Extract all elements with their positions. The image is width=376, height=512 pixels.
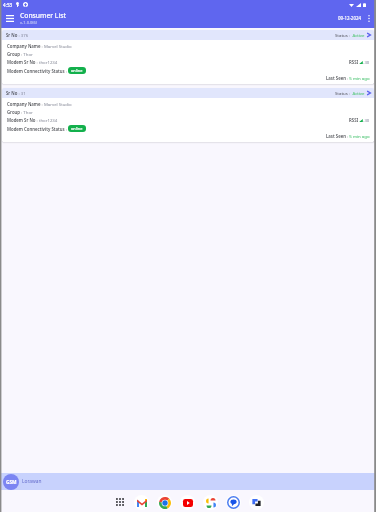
button[interactable]: Navigation menu (0, 9, 20, 28)
staticText: Last Seen : 5 min ago (326, 133, 370, 139)
button[interactable]: More options (362, 9, 376, 28)
staticText: Modem Connectivity Status : (7, 68, 67, 74)
button[interactable]: Gmail (134, 495, 149, 510)
staticText: Consumer List (20, 11, 66, 20)
staticText: 09-12-2024 (338, 15, 361, 21)
staticText: Modem Connectivity Status : (7, 126, 67, 132)
button[interactable]: Phone Link (249, 495, 264, 510)
staticText: v-1.0.0(6) (20, 20, 38, 25)
button[interactable]: GSM (0, 473, 376, 490)
staticText: Group : Thor (7, 109, 33, 115)
staticText: Lorawan (22, 478, 42, 485)
button[interactable]: Sr No : 376 (2, 30, 374, 84)
staticText: Sr No : 376 (6, 32, 29, 38)
staticText: Company Name : Marvel Studio (7, 101, 72, 107)
staticText: Status : Active (335, 90, 365, 96)
staticText: Last Seen : 5 min ago (326, 75, 370, 81)
staticText: -30 (363, 59, 370, 65)
button[interactable]: Chrome (157, 495, 172, 510)
button[interactable]: YouTube (180, 495, 195, 510)
staticText: GSM (6, 479, 17, 486)
staticText: Modem Sr No : thor1234 (7, 59, 58, 65)
button[interactable]: Photos (203, 495, 218, 510)
staticText: RSSI (349, 117, 359, 123)
staticText: online (71, 68, 83, 73)
button[interactable]: Messages (226, 495, 241, 510)
staticText: 4:53 (3, 2, 13, 8)
button[interactable]: All apps (113, 495, 127, 509)
staticText: Status : Active (335, 32, 365, 38)
staticText: RSSI (349, 59, 359, 65)
staticText: Sr No : 31 (6, 90, 26, 96)
staticText: Group : Thor (7, 51, 33, 57)
staticText: Company Name : Marvel Studio (7, 43, 72, 49)
button[interactable]: Sr No : 31 (2, 88, 374, 142)
staticText: online (71, 126, 83, 131)
staticText: Modem Sr No : thor1234 (7, 117, 58, 123)
staticText: -30 (363, 117, 370, 123)
